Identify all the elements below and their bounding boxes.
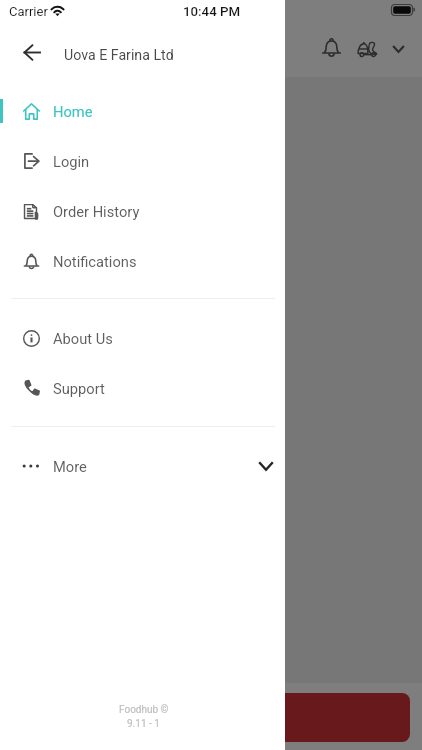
button[interactable]: Support xyxy=(0,363,285,413)
staticText: Notifications xyxy=(53,253,137,270)
staticText: Order History xyxy=(53,203,140,220)
button[interactable]: About Us xyxy=(0,313,285,363)
button[interactable]: Expand xyxy=(384,35,412,63)
staticText: 10:44 PM xyxy=(183,4,241,20)
staticText: Foodhub © xyxy=(119,704,169,716)
staticText: Carrier xyxy=(9,4,48,19)
button[interactable]: Delivery xyxy=(353,35,381,63)
button[interactable]: Back xyxy=(22,42,42,62)
staticText: Support xyxy=(53,380,105,397)
staticText: Uova E Farina Ltd xyxy=(64,47,174,64)
staticText: Home xyxy=(53,103,93,120)
button[interactable]: Notifications xyxy=(0,236,285,286)
staticText: More xyxy=(53,458,87,475)
button[interactable]: Order History xyxy=(0,186,285,236)
staticText: About Us xyxy=(53,330,113,347)
staticText: 9.11 - 1 xyxy=(127,718,160,730)
staticText: Login xyxy=(53,153,90,170)
button[interactable]: Notifications xyxy=(317,33,345,61)
button[interactable] xyxy=(16,693,410,742)
button[interactable]: Home xyxy=(0,86,285,136)
button[interactable]: Login xyxy=(0,136,285,186)
button[interactable]: More xyxy=(0,441,285,491)
